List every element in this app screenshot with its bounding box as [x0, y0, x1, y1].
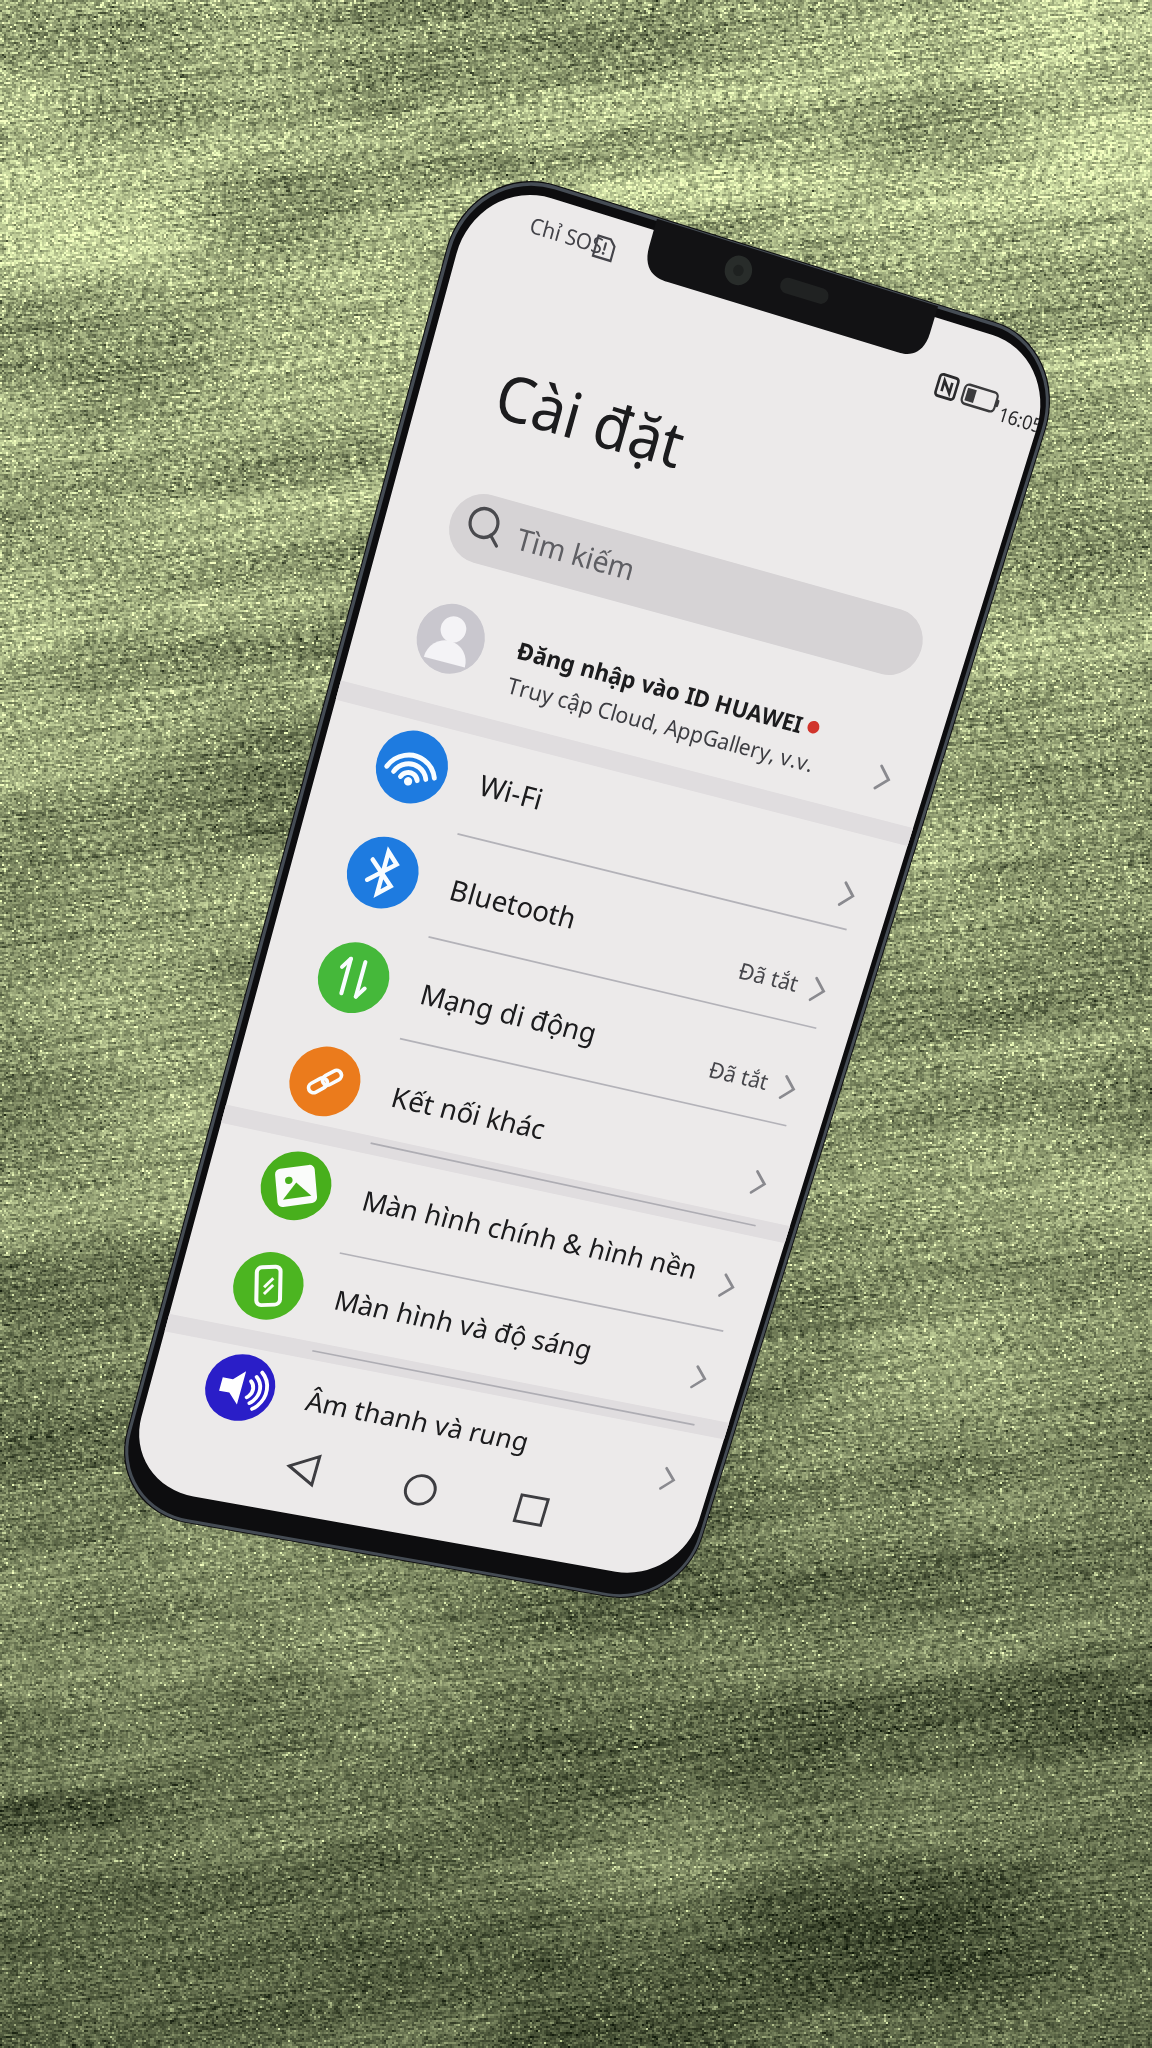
button[interactable]: Huawei phone showing Settings screen on …: [0, 0, 1152, 2048]
